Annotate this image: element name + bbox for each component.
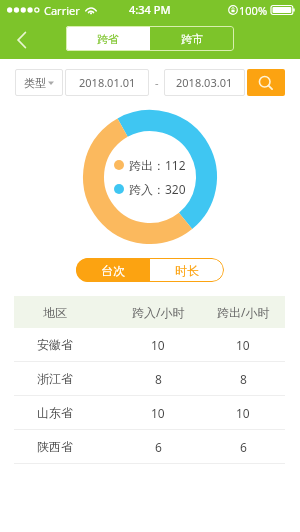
staticText: 2018.03.01 — [176, 75, 233, 90]
staticText: 时长 — [175, 263, 199, 278]
staticText: 跨省 — [97, 32, 119, 46]
button[interactable]: 陕西省 — [14, 430, 285, 463]
button[interactable]: Search — [247, 69, 285, 96]
button[interactable]: 2018.01.01 — [65, 69, 149, 96]
button[interactable]: 安徽省 — [14, 328, 285, 361]
button[interactable]: 2018.03.01 — [164, 69, 245, 96]
button[interactable]: 跨省 — [66, 26, 150, 51]
staticText: 4:34 PM — [129, 2, 171, 17]
staticText: 浙江省 — [37, 371, 73, 386]
button[interactable]: 时长 — [150, 258, 224, 282]
staticText: 安徽省 — [37, 337, 73, 352]
button[interactable]: 台次 — [76, 258, 150, 282]
button[interactable]: 跨市 — [150, 26, 234, 51]
staticText: 2018.01.01 — [79, 75, 136, 90]
button[interactable]: 浙江省 — [14, 362, 285, 395]
staticText: 类型 — [24, 76, 46, 90]
staticText: - — [155, 75, 159, 90]
staticText: 10 — [151, 337, 165, 353]
staticText: 8 — [155, 371, 162, 387]
staticText: 台次 — [101, 263, 125, 278]
staticText: 跨出：112 — [129, 157, 186, 173]
staticText: Carrier — [44, 3, 80, 18]
staticText: 10 — [236, 405, 250, 421]
staticText: 10 — [151, 405, 165, 421]
staticText: 100% — [239, 3, 268, 18]
staticText: 跨出/小时 — [217, 304, 270, 320]
staticText: 跨入：320 — [129, 181, 186, 197]
button[interactable]: Back — [8, 26, 36, 54]
staticText: 6 — [240, 439, 247, 455]
staticText: 跨入/小时 — [132, 304, 185, 320]
button[interactable]: 类型 — [15, 69, 63, 96]
staticText: 山东省 — [37, 405, 73, 420]
button[interactable]: 山东省 — [14, 396, 285, 429]
staticText: 8 — [240, 371, 247, 387]
staticText: 跨市 — [181, 32, 203, 46]
staticText: 6 — [155, 439, 162, 455]
staticText: 地区 — [43, 305, 67, 320]
staticText: 陕西省 — [37, 439, 73, 454]
staticText: 10 — [236, 337, 250, 353]
